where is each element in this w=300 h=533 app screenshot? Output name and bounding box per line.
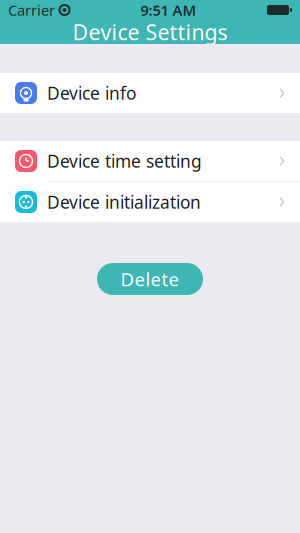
- staticText: Device initialization: [47, 190, 201, 213]
- staticText: Carrier: [8, 0, 55, 20]
- staticText: Device Settings: [72, 18, 227, 46]
- button[interactable]: Delete: [97, 263, 203, 295]
- staticText: Delete: [120, 267, 179, 291]
- staticText: Device info: [47, 81, 136, 104]
- button[interactable]: Device time setting: [0, 141, 300, 181]
- button[interactable]: Device info: [0, 73, 300, 113]
- button[interactable]: Device initialization: [0, 182, 300, 222]
- staticText: 9:51 AM: [140, 0, 196, 20]
- staticText: Device time setting: [47, 149, 202, 172]
